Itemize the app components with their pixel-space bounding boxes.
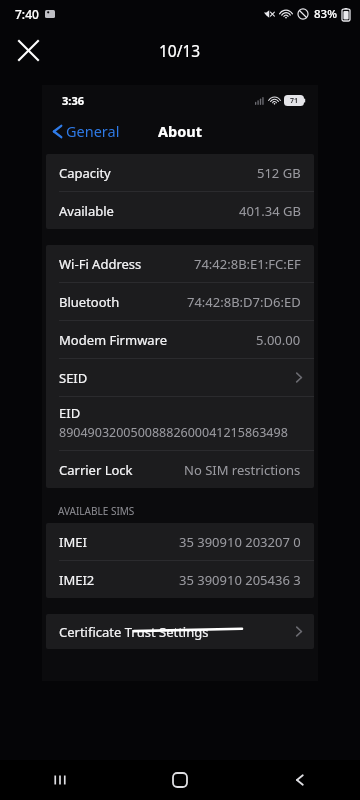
staticText: 35 390910 205436 3 — [179, 571, 301, 589]
staticText: EID — [59, 404, 81, 422]
staticText: IMEI — [59, 533, 87, 551]
button[interactable]: Home — [120, 760, 240, 800]
staticText: SEID — [59, 369, 88, 387]
staticText: 74:42:8B:E1:FC:EF — [194, 255, 301, 273]
staticText: Available — [59, 202, 114, 220]
button[interactable]: Recent apps — [0, 760, 120, 800]
staticText: No SIM restrictions — [184, 461, 301, 479]
staticText: Bluetooth — [59, 293, 120, 311]
staticText: Capacity — [59, 164, 111, 182]
staticText: Modem Firmware — [59, 331, 168, 349]
button[interactable]: IMEI2 — [46, 561, 314, 598]
button[interactable]: SEID — [46, 359, 314, 396]
staticText: 7:40 — [15, 6, 39, 22]
staticText: 3:36 — [62, 93, 84, 108]
staticText: About — [158, 121, 202, 141]
staticText: 512 GB — [257, 164, 301, 182]
button[interactable]: Capacity — [46, 154, 314, 191]
staticText: 401.34 GB — [239, 202, 301, 220]
button[interactable]: Bluetooth — [46, 283, 314, 320]
staticText: 71 — [290, 96, 299, 106]
staticText: Wi-Fi Address — [59, 255, 142, 273]
staticText: Certificate Trust Settings — [59, 623, 209, 641]
staticText: General — [66, 121, 120, 141]
button[interactable]: EID — [46, 397, 314, 450]
button[interactable]: Close — [6, 28, 50, 72]
button[interactable]: Back — [240, 760, 360, 800]
staticText: 89049032005008882600041215863498 — [59, 424, 288, 441]
staticText: 35 390910 203207 0 — [179, 533, 301, 551]
button[interactable]: Modem Firmware — [46, 321, 314, 358]
staticText: 74:42:8B:D7:D6:ED — [187, 293, 301, 311]
staticText: 83% — [314, 6, 337, 22]
button[interactable]: Carrier Lock — [46, 451, 314, 488]
button[interactable]: IMEI — [46, 523, 314, 560]
button[interactable]: Wi-Fi Address — [46, 245, 314, 282]
staticText: AVAILABLE SIMS — [58, 504, 135, 518]
staticText: Carrier Lock — [59, 461, 133, 479]
button[interactable]: General — [53, 121, 120, 141]
button[interactable]: Certificate Trust Settings — [46, 614, 314, 649]
button[interactable]: Available — [46, 192, 314, 229]
staticText: 10/13 — [159, 40, 201, 61]
staticText: IMEI2 — [59, 571, 95, 589]
staticText: 5.00.00 — [256, 331, 301, 349]
